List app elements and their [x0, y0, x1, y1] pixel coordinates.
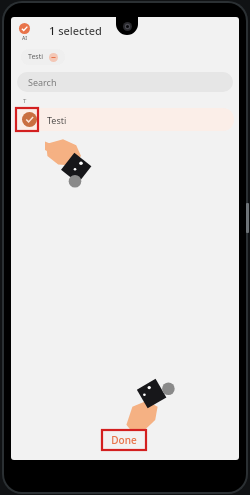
button[interactable]: Done — [102, 430, 146, 450]
button[interactable]: Testi — [21, 49, 65, 65]
staticText: AI — [22, 35, 28, 42]
staticText: Search — [28, 76, 57, 88]
button[interactable]: Select all — [17, 21, 32, 44]
staticText: Done — [111, 433, 137, 447]
button[interactable]: Testi — [16, 108, 234, 131]
staticText: Testi — [28, 52, 44, 62]
staticText: T — [23, 97, 27, 105]
staticText: Testi — [47, 114, 67, 126]
staticText: 1 selected — [49, 23, 102, 38]
button[interactable]: Search — [17, 72, 233, 92]
